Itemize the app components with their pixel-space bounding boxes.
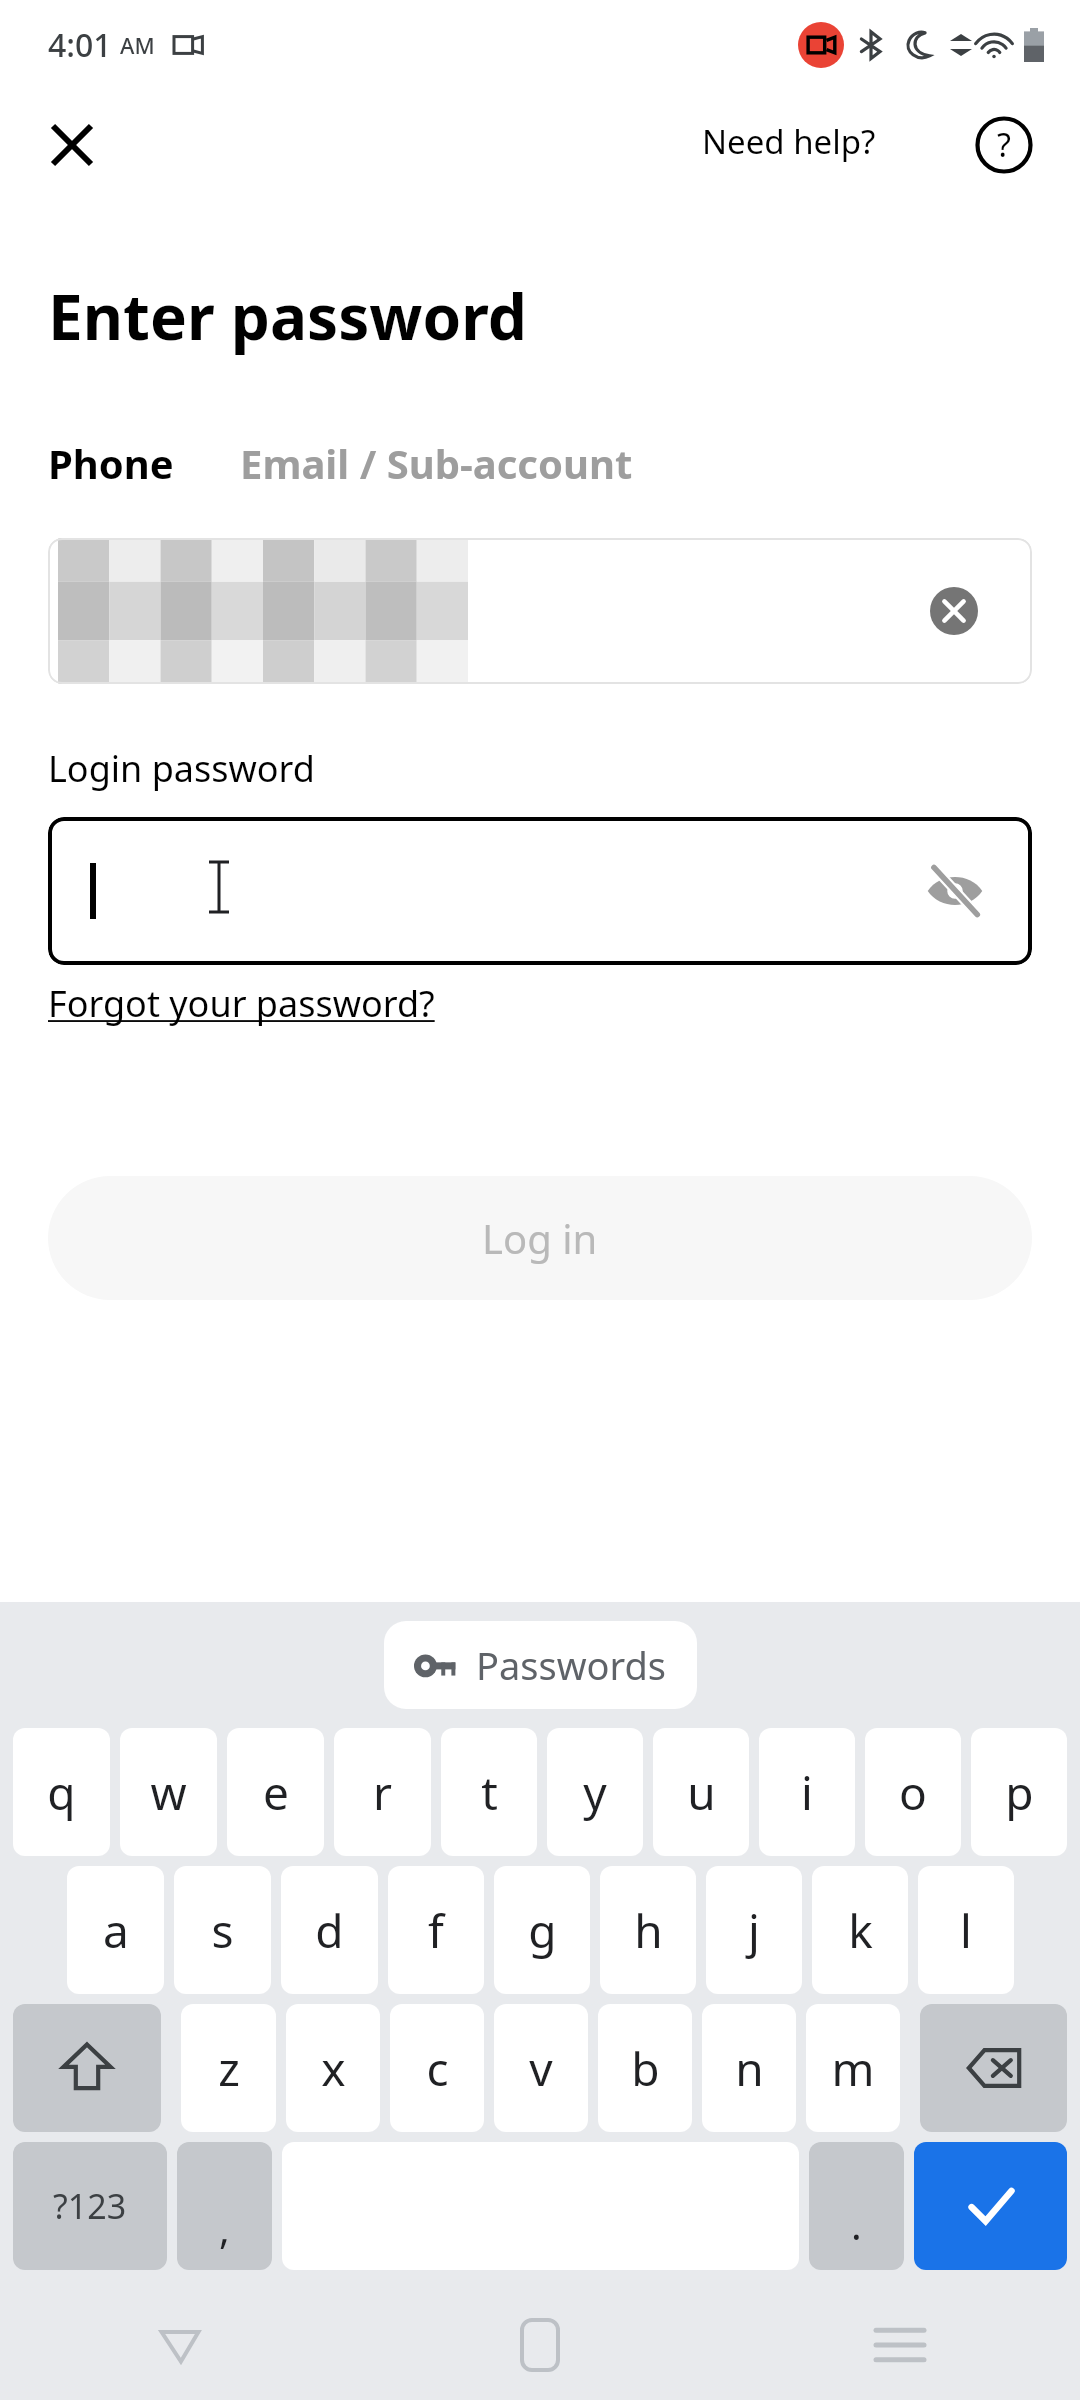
staticText: t (481, 1761, 498, 1824)
button[interactable]: , (177, 2142, 272, 2270)
staticText: Need help? (702, 119, 876, 164)
staticText: Login password (48, 744, 315, 793)
button[interactable]: Back (0, 2290, 360, 2400)
button[interactable]: a (67, 1866, 164, 1994)
staticText: Forgot your password? (48, 979, 435, 1028)
button[interactable]: Clear (48, 538, 1032, 684)
staticText: l (960, 1899, 972, 1962)
button[interactable]: t (441, 1728, 537, 1856)
button[interactable]: Enter (914, 2142, 1067, 2270)
staticText: u (687, 1761, 716, 1824)
staticText: e (263, 1761, 289, 1824)
button[interactable]: g (494, 1866, 590, 1994)
staticText: f (428, 1899, 444, 1962)
staticText: k (848, 1899, 873, 1962)
staticText: c (426, 2037, 449, 2100)
button[interactable]: d (281, 1866, 378, 1994)
staticText: Enter password (48, 274, 527, 358)
staticText: . (851, 2197, 862, 2251)
button[interactable]: r (334, 1728, 431, 1856)
button[interactable]: Backspace (920, 2004, 1067, 2132)
staticText: AM (120, 30, 155, 60)
staticText: , (219, 2201, 230, 2255)
staticText: s (211, 1899, 234, 1962)
staticText: ?123 (53, 2183, 127, 2229)
staticText: a (103, 1899, 129, 1962)
staticText: o (899, 1761, 927, 1824)
staticText: m (831, 2037, 875, 2100)
button[interactable]: h (600, 1866, 696, 1994)
staticText: Log in (482, 1211, 598, 1265)
staticText: v (529, 2037, 553, 2100)
button[interactable]: x (286, 2004, 380, 2132)
staticText: n (735, 2037, 764, 2100)
button[interactable]: k (812, 1866, 908, 1994)
button[interactable]: Passwords (384, 1621, 697, 1709)
button[interactable]: Phone (48, 436, 174, 490)
button[interactable]: Help (964, 105, 1044, 185)
button[interactable]: Need help? (672, 95, 906, 188)
staticText: b (631, 2037, 660, 2100)
staticText: Passwords (476, 1639, 667, 1691)
staticText: i (801, 1761, 813, 1824)
button[interactable]: v (494, 2004, 588, 2132)
button[interactable]: w (120, 1728, 217, 1856)
button[interactable]: l (918, 1866, 1014, 1994)
staticText: j (748, 1899, 760, 1962)
button[interactable]: Shift (13, 2004, 161, 2132)
button[interactable]: s (174, 1866, 271, 1994)
staticText: q (47, 1761, 76, 1824)
button[interactable]: o (865, 1728, 961, 1856)
button[interactable]: f (388, 1866, 484, 1994)
staticText: ? (997, 123, 1011, 167)
button[interactable]: Home (360, 2290, 720, 2400)
button[interactable]: Close (30, 103, 114, 187)
button[interactable]: Recents (720, 2290, 1080, 2400)
staticText: Email / Sub-account (240, 436, 633, 490)
button[interactable]: m (806, 2004, 900, 2132)
button[interactable]: Forgot your password? (48, 979, 435, 1028)
button[interactable]: Show password (48, 817, 1032, 965)
button[interactable]: q (13, 1728, 110, 1856)
staticText: z (218, 2037, 240, 2100)
button[interactable]: Clear (918, 575, 990, 647)
button[interactable]: c (390, 2004, 484, 2132)
button[interactable]: p (971, 1728, 1067, 1856)
button[interactable]: Email / Sub-account (240, 436, 633, 490)
staticText: y (583, 1761, 607, 1824)
button[interactable]: b (598, 2004, 692, 2132)
staticText: h (634, 1899, 663, 1962)
button[interactable]: z (181, 2004, 276, 2132)
staticText: d (315, 1899, 344, 1962)
button[interactable]: . (809, 2142, 904, 2270)
staticText: Phone (48, 436, 174, 490)
staticText: x (321, 2037, 346, 2100)
button[interactable]: u (653, 1728, 749, 1856)
staticText: p (1005, 1761, 1034, 1824)
button[interactable]: i (759, 1728, 855, 1856)
button[interactable]: j (706, 1866, 802, 1994)
button[interactable]: Log in (48, 1176, 1032, 1300)
button[interactable]: Show password (914, 850, 996, 932)
staticText: g (528, 1899, 557, 1962)
staticText: 4:01 (48, 23, 112, 67)
button[interactable]: n (702, 2004, 796, 2132)
button[interactable]: e (227, 1728, 324, 1856)
staticText: w (150, 1761, 187, 1824)
button[interactable]: ?123 (13, 2142, 167, 2270)
button[interactable]: y (547, 1728, 643, 1856)
staticText: r (373, 1761, 392, 1824)
